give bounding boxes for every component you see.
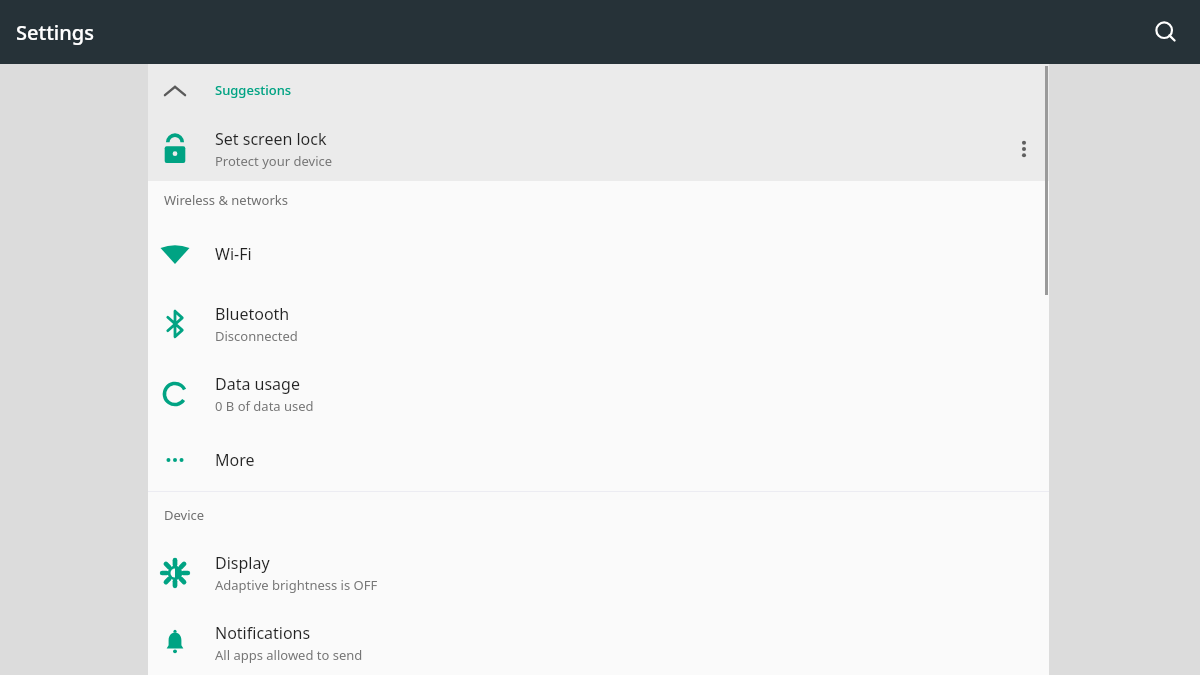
staticText: Set screen lock [215,128,327,150]
staticText: Bluetooth [215,303,290,325]
staticText: Adaptive brightness is OFF [215,576,378,594]
staticText: Suggestions [215,81,292,99]
staticText: Wi-Fi [215,243,252,265]
staticText: Data usage [215,373,300,395]
button[interactable]: More [148,429,1049,491]
staticText: Wireless & networks [164,191,288,209]
button[interactable]: Display [148,538,1049,608]
button[interactable]: More options [1004,129,1044,169]
button[interactable]: Search [1142,8,1190,56]
button[interactable]: Suggestions [148,64,1049,116]
button[interactable]: Data usage [148,359,1049,429]
button[interactable]: Wi-Fi [148,219,1049,289]
button[interactable]: Bluetooth [148,289,1049,359]
staticText: All apps allowed to send [215,646,363,664]
staticText: Device [164,506,205,524]
staticText: 0 B of data used [215,397,314,415]
staticText: Notifications [215,622,311,644]
button[interactable]: Set screen lock [148,116,1049,181]
button[interactable]: Notifications [148,608,1049,675]
staticText: Disconnected [215,327,298,345]
staticText: Display [215,552,270,574]
staticText: Settings [16,19,94,46]
staticText: Protect your device [215,152,333,170]
staticText: More [215,449,255,471]
